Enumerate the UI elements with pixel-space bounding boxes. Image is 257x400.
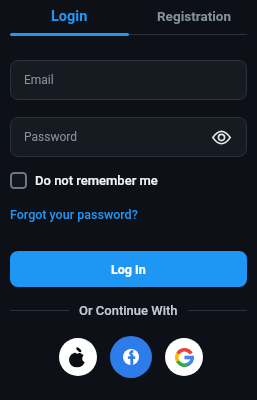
button[interactable]: Do not remember me — [10, 172, 158, 189]
button[interactable] — [59, 338, 97, 376]
staticText: Or Continue With — [79, 303, 178, 318]
staticText: Registration — [157, 8, 232, 24]
button[interactable]: Email — [10, 60, 247, 100]
button[interactable]: Password — [10, 117, 247, 157]
staticText: Log In — [111, 262, 146, 277]
button[interactable]: Registration — [128, 0, 247, 32]
staticText: Do not remember me — [35, 173, 158, 188]
staticText: Email — [24, 73, 54, 87]
button[interactable]: Forgot your password? — [10, 207, 138, 222]
staticText: Login — [51, 8, 88, 25]
button[interactable]: Log In — [10, 251, 247, 287]
button[interactable] — [165, 338, 203, 376]
button[interactable]: Login — [10, 0, 128, 32]
staticText: Password — [24, 130, 78, 144]
button[interactable] — [110, 336, 152, 378]
